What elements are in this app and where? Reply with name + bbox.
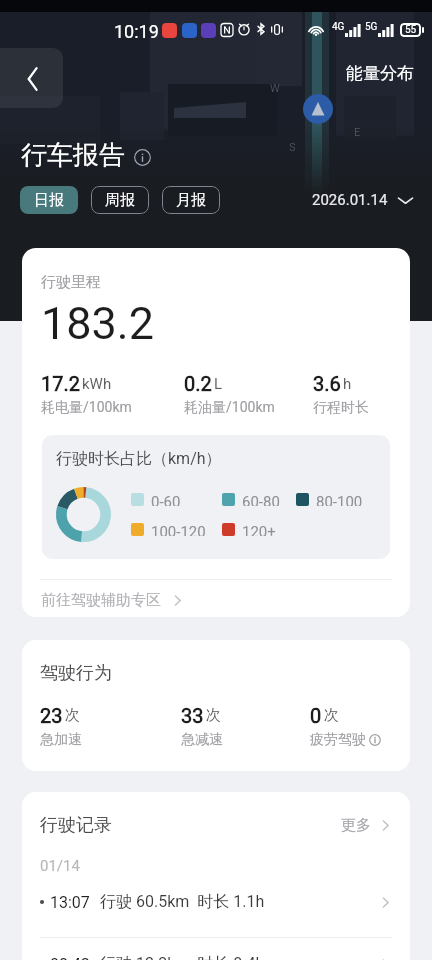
staticText: 60-80 [242, 493, 280, 506]
staticText: 0-60 [151, 493, 181, 506]
button[interactable]: 前往驾驶辅助专区 [22, 580, 410, 617]
staticText: 耗电量/100km [41, 399, 132, 417]
staticText: S [289, 141, 296, 154]
staticText: 次 [206, 706, 221, 725]
staticText: L [214, 375, 223, 393]
button[interactable]: 08:42 [22, 949, 410, 960]
staticText: 17.2 [41, 372, 80, 395]
staticText: 120+ [242, 523, 276, 536]
staticText: 0 [310, 704, 322, 727]
staticText: 行程时长 [313, 399, 369, 417]
staticText: 80-100 [316, 493, 363, 506]
staticText: 周报 [105, 191, 135, 210]
staticText: 行驶时长占比（km/h） [56, 449, 222, 469]
staticText: 13:07 [50, 893, 90, 912]
staticText: 23 [40, 704, 63, 727]
staticText: 前往驾驶辅助专区 [41, 591, 161, 610]
staticText: kWh [82, 375, 112, 393]
staticText: 183.2 [41, 297, 155, 350]
staticText: 急加速 [40, 731, 82, 749]
button[interactable]: 13:07 [22, 887, 410, 917]
staticText: 疲劳驾驶 [310, 731, 366, 749]
staticText: 行驶里程 [41, 273, 101, 292]
staticText: 急减速 [181, 731, 223, 749]
button[interactable]: 日报 [20, 186, 78, 214]
staticText: 次 [65, 706, 80, 725]
staticText: 次 [324, 706, 339, 725]
staticText: 01/14 [40, 857, 80, 875]
staticText: W [270, 82, 280, 95]
staticText: 行驶 60.5km 时长 1.1h [100, 892, 265, 912]
staticText: 08:42 [50, 955, 90, 960]
button[interactable]: 周报 [91, 186, 149, 214]
staticText: 行车报告 [21, 139, 125, 172]
staticText: 4G [332, 21, 345, 33]
button[interactable]: 月报 [162, 186, 220, 214]
staticText: 0.2 [184, 372, 212, 395]
staticText: E [354, 126, 361, 139]
staticText: 驾驶行为 [40, 662, 112, 685]
staticText: 行驶记录 [40, 814, 112, 837]
staticText: 3.6 [313, 372, 341, 395]
staticText: h [343, 375, 352, 393]
button[interactable]: 能量分布 [328, 57, 432, 90]
staticText: 5G [365, 21, 378, 33]
button[interactable]: Back [6, 51, 62, 107]
staticText: 10:19 [114, 21, 159, 42]
staticText: 55 [405, 24, 417, 36]
staticText: 2026.01.14 [312, 191, 388, 209]
staticText: 更多 [341, 816, 371, 835]
staticText: 月报 [176, 191, 206, 210]
button[interactable]: 更多 [341, 816, 392, 835]
staticText: 33 [181, 704, 204, 727]
staticText: 100-120 [151, 523, 206, 536]
staticText: 日报 [34, 191, 64, 210]
staticText: 耗油量/100km [184, 399, 275, 417]
staticText: 能量分布 [346, 63, 414, 84]
staticText: 行驶 12.3km 时长 0.4h [100, 954, 265, 960]
button[interactable]: 2026.01.14 [312, 191, 414, 209]
